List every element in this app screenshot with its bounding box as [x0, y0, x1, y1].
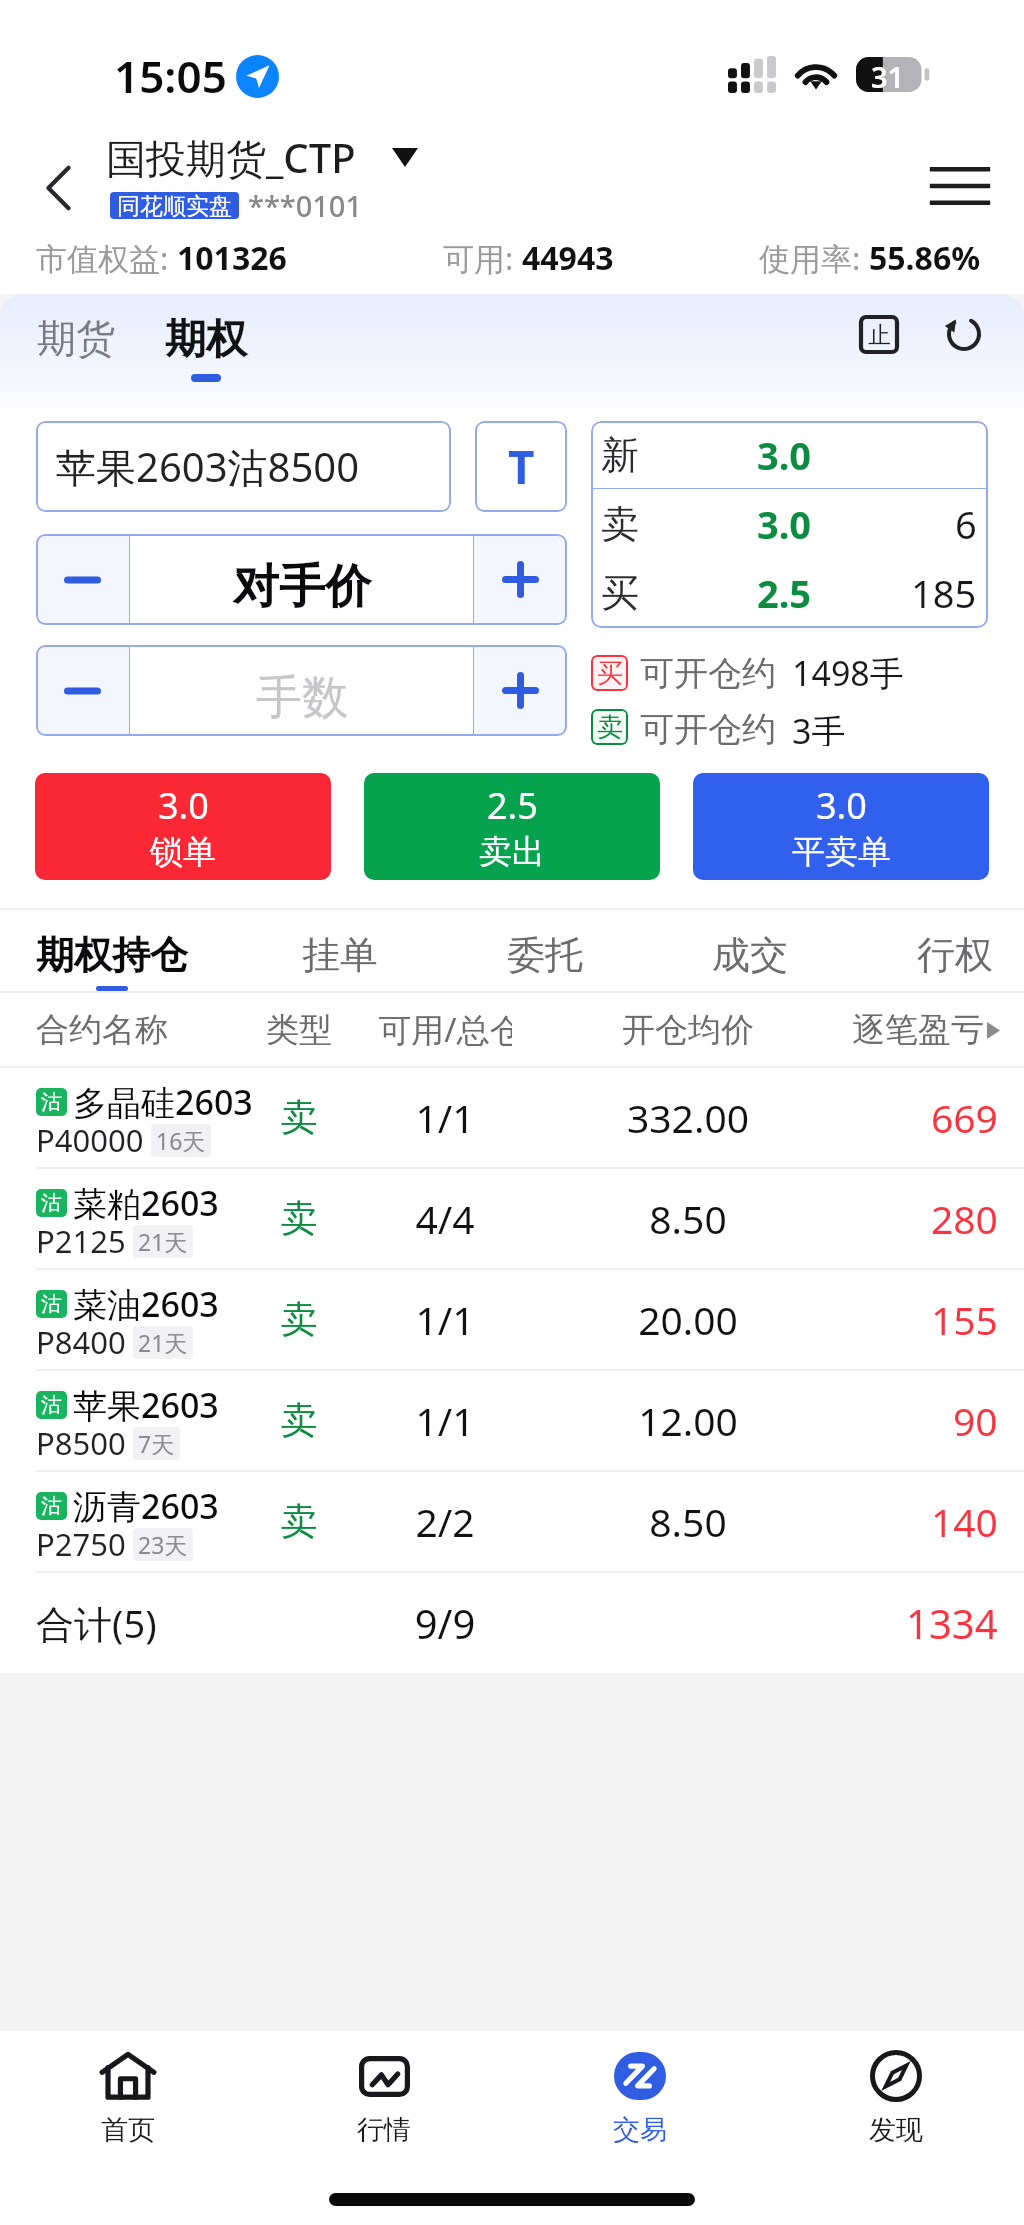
staticText: 20.00	[621, 1293, 755, 1346]
staticText: P8400	[36, 1321, 126, 1363]
staticText: 9/9	[378, 1596, 512, 1650]
staticText: 可开仓约	[640, 708, 776, 746]
staticText: 卖	[597, 711, 623, 744]
button[interactable]: 期权	[165, 314, 247, 382]
button[interactable]: Refresh	[944, 314, 984, 354]
staticText: 逐笔盈亏	[852, 1009, 984, 1051]
staticText: 发现	[869, 2113, 923, 2143]
staticText: 332.00	[621, 1091, 755, 1144]
button[interactable]: 手数	[130, 645, 473, 736]
staticText: 合计(5)	[36, 1597, 157, 1649]
button[interactable]: 发现	[768, 2031, 1024, 2143]
staticText: 185	[911, 567, 977, 619]
button[interactable]: 沽	[0, 1270, 1024, 1371]
staticText: 可用:	[443, 237, 522, 279]
button[interactable]: 行情	[256, 2031, 512, 2143]
staticText: 2.5	[487, 781, 538, 830]
button[interactable]: Increase	[474, 534, 567, 625]
staticText: 平卖单	[792, 831, 891, 873]
staticText: P2125	[36, 1220, 126, 1262]
staticText: 菜油2603	[73, 1281, 219, 1327]
button[interactable]: 3.0	[693, 773, 989, 880]
staticText: T	[508, 435, 535, 498]
staticText: 卖	[232, 1498, 366, 1545]
button[interactable]: 沽	[0, 1169, 1024, 1270]
staticText: 卖	[232, 1296, 366, 1343]
staticText: 卖	[232, 1094, 366, 1141]
staticText: 国投期货_CTP	[106, 130, 356, 185]
button[interactable]: 委托	[495, 931, 595, 979]
button[interactable]: 挂单	[290, 931, 390, 979]
button[interactable]: Decrease	[36, 645, 129, 736]
staticText: 可开仓约	[640, 652, 776, 695]
button[interactable]: 期货	[37, 314, 115, 363]
button[interactable]: 沽	[0, 1371, 1024, 1472]
staticText: 合约名称	[36, 1009, 168, 1051]
staticText: 280	[931, 1192, 998, 1245]
staticText: 委托	[495, 931, 595, 979]
staticText: 开仓均价	[621, 1009, 755, 1051]
button[interactable]: 交易	[512, 2031, 768, 2143]
staticText: 沽	[41, 1493, 62, 1519]
staticText: 使用率:	[759, 237, 869, 279]
staticText: 12.00	[621, 1394, 755, 1447]
staticText: 3.0	[816, 781, 867, 830]
staticText: 卖	[601, 500, 639, 548]
staticText: 沽	[41, 1291, 62, 1317]
staticText: 锁单	[150, 831, 216, 873]
staticText: 卖	[232, 1397, 366, 1444]
button[interactable]: 国投期货_CTP	[106, 130, 418, 185]
staticText: 23天	[138, 1529, 188, 1560]
staticText: 期权持仓	[36, 931, 188, 979]
staticText: 21天	[138, 1226, 188, 1257]
staticText: 4/4	[378, 1192, 512, 1245]
staticText: 8.50	[621, 1495, 755, 1548]
button[interactable]: 沽	[0, 1472, 1024, 1573]
button[interactable]: 2.5	[364, 773, 660, 880]
staticText: 挂单	[290, 931, 390, 979]
staticText: 成交	[700, 931, 800, 979]
button[interactable]: Menu	[922, 156, 998, 216]
staticText: 卖出	[479, 831, 545, 873]
staticText: 同花顺实盘	[117, 192, 232, 219]
staticText: 669	[931, 1091, 998, 1144]
staticText: 1/1	[378, 1394, 512, 1447]
staticText: 首页	[101, 2113, 155, 2143]
staticText: 21天	[138, 1327, 188, 1358]
button[interactable]: 对手价	[130, 534, 473, 625]
button[interactable]: 成交	[700, 931, 800, 979]
staticText: 买	[597, 657, 623, 690]
staticText: 对手价	[233, 558, 371, 616]
staticText: 买	[601, 569, 639, 617]
staticText: 多晶硅2603	[73, 1079, 253, 1125]
staticText: 55.86%	[869, 236, 981, 280]
staticText: 期权	[165, 314, 247, 366]
staticText: 手数	[256, 669, 348, 727]
staticText: 1334	[906, 1596, 998, 1650]
button[interactable]: Stop loss	[861, 317, 897, 352]
staticText: P2750	[36, 1523, 126, 1565]
staticText: 1/1	[378, 1091, 512, 1144]
button[interactable]: 3.0	[35, 773, 331, 880]
button[interactable]: 首页	[0, 2031, 256, 2143]
staticText: 2.5	[714, 567, 854, 619]
staticText: 行权	[905, 931, 1005, 979]
button[interactable]: Decrease	[36, 534, 129, 625]
button[interactable]: T type	[475, 421, 567, 512]
staticText: 1/1	[378, 1293, 512, 1346]
staticText: 15:05	[114, 46, 227, 106]
button[interactable]: 行权	[905, 931, 1005, 979]
staticText: 90	[953, 1394, 998, 1447]
staticText: 市值权益:	[36, 237, 177, 279]
staticText: 止	[868, 321, 891, 350]
button[interactable]: 沽	[0, 1068, 1024, 1169]
button[interactable]: 期权持仓	[36, 910, 188, 991]
staticText: 16天	[156, 1125, 206, 1156]
button[interactable]: Increase	[474, 645, 567, 736]
staticText: 沽	[41, 1089, 62, 1115]
staticText: 沽	[41, 1392, 62, 1418]
staticText: 7天	[138, 1428, 175, 1459]
staticText: 31	[871, 57, 905, 92]
button[interactable]: 苹果2603沽8500	[36, 421, 451, 512]
button[interactable]: Back	[20, 150, 96, 226]
